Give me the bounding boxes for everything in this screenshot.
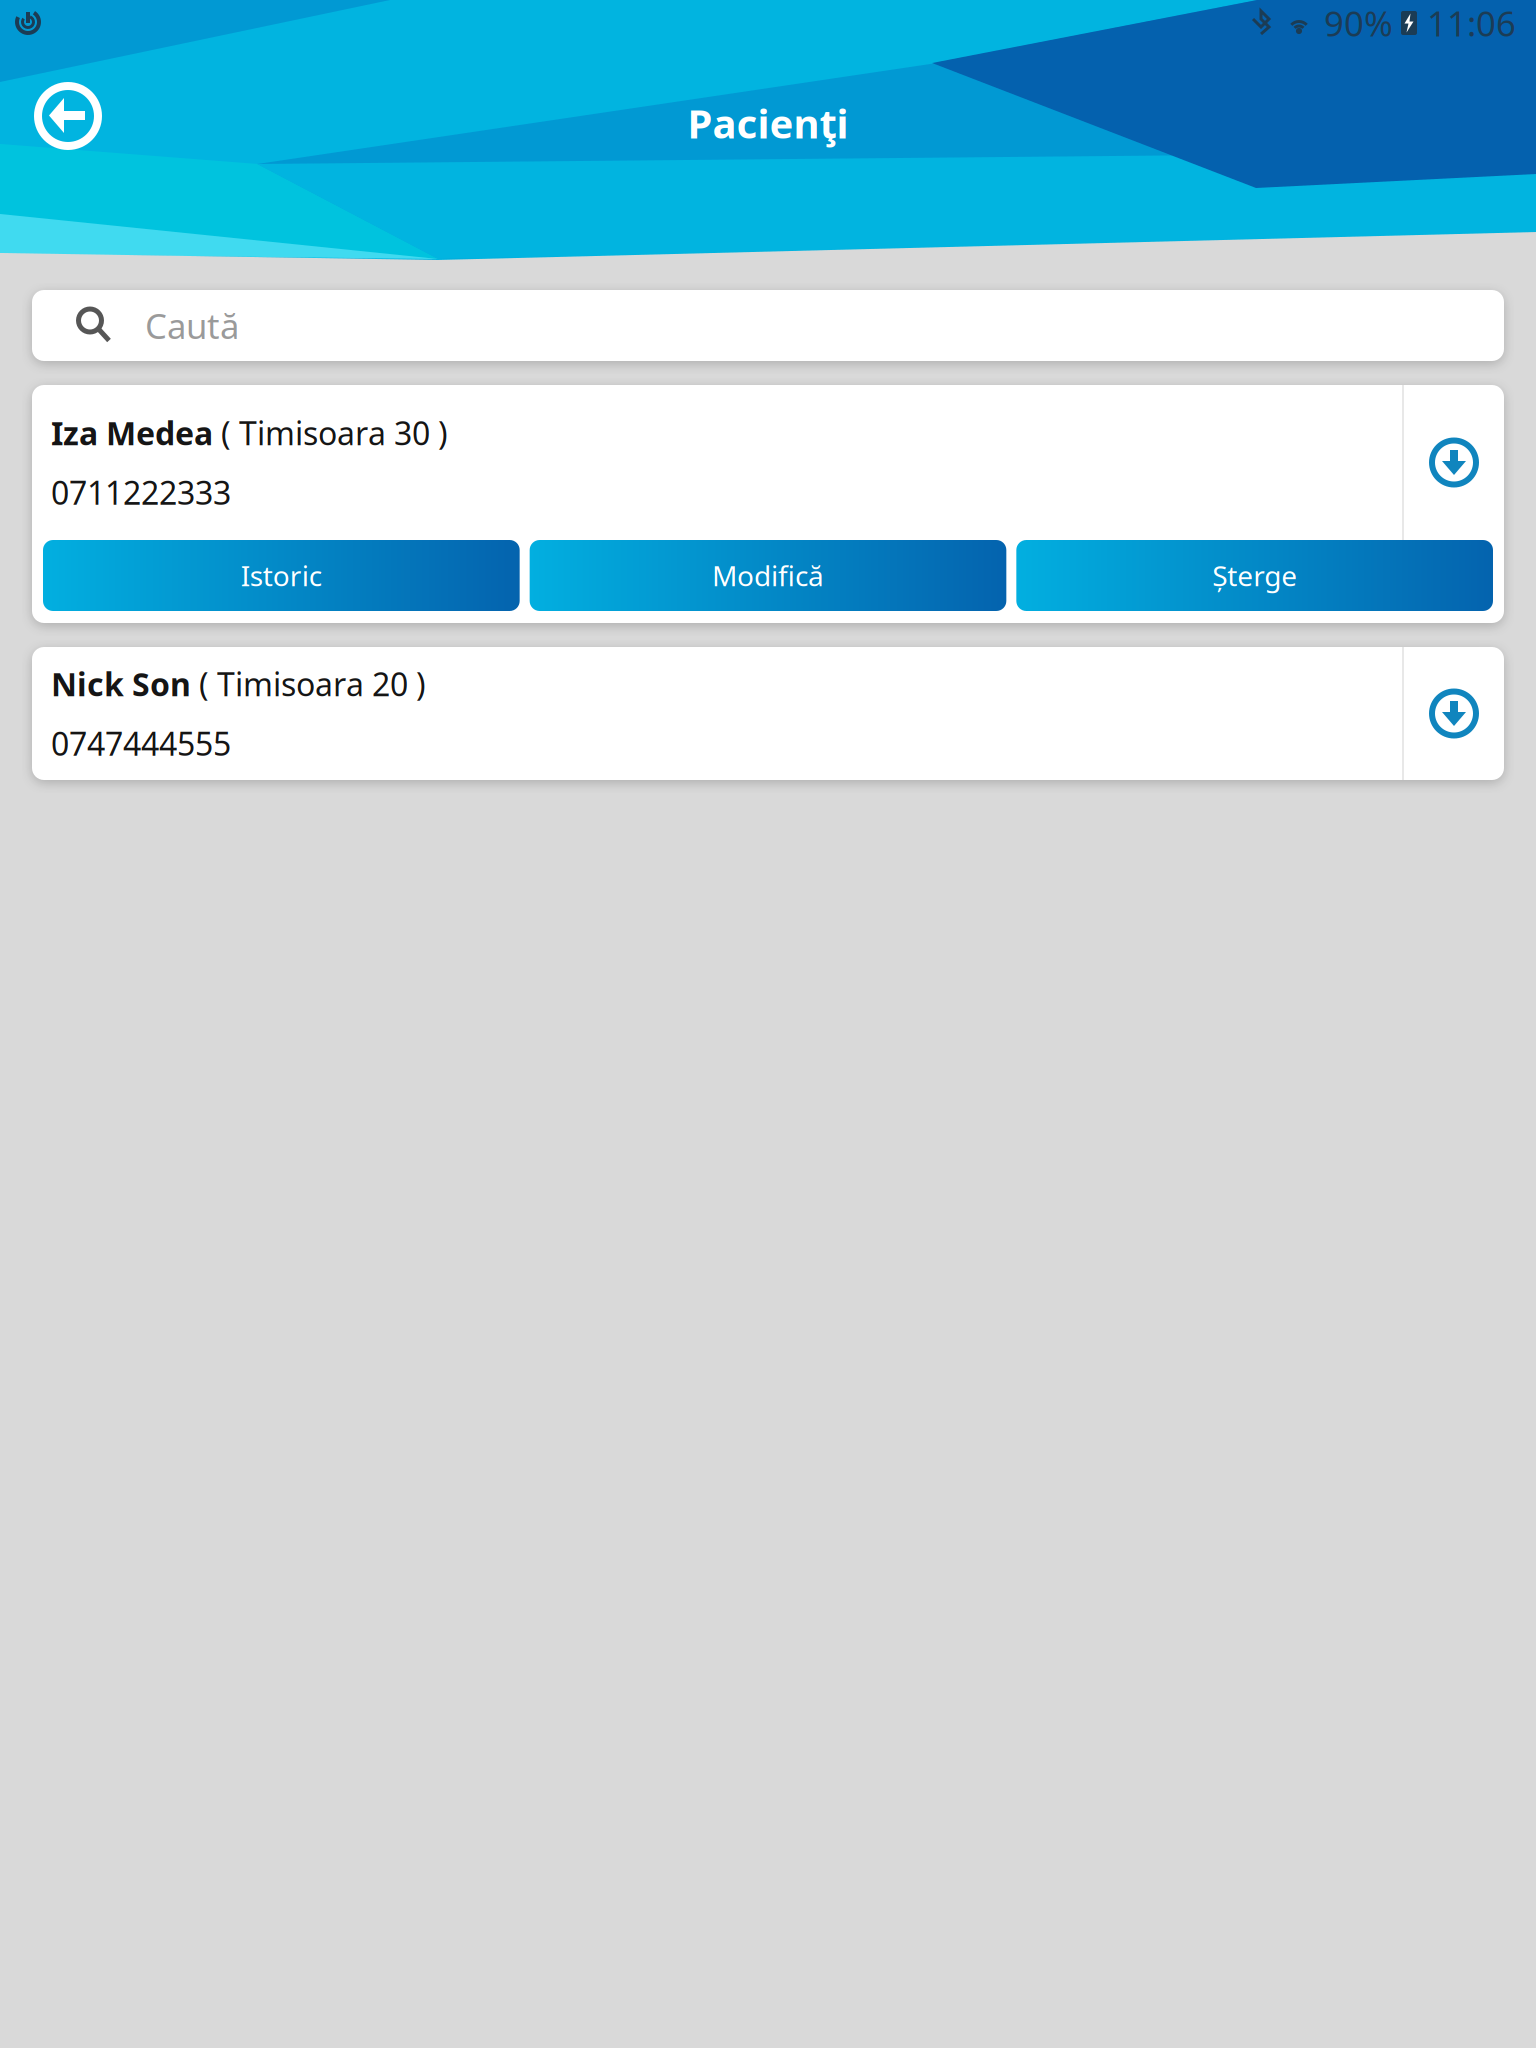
staticText: 0711222333: [51, 471, 231, 513]
staticText: Istoric: [241, 557, 322, 594]
staticText: ( Timisoara 20 ): [191, 662, 426, 705]
staticText: 11:06: [1427, 0, 1516, 46]
button[interactable]: Șterge: [1016, 540, 1493, 611]
button[interactable]: Download: [1404, 412, 1504, 512]
staticText: Iza Medea: [51, 411, 213, 454]
staticText: 90%: [1324, 0, 1393, 46]
button[interactable]: Search: [32, 290, 1504, 361]
staticText: ( Timisoara 30 ): [213, 411, 448, 454]
button[interactable]: Istoric: [43, 540, 520, 611]
staticText: Șterge: [1212, 557, 1297, 594]
staticText: Nick Son: [51, 662, 191, 705]
button[interactable]: Download: [1404, 663, 1504, 763]
staticText: Caută: [145, 302, 239, 348]
button[interactable]: Back: [22, 70, 114, 162]
staticText: 0747444555: [51, 722, 231, 764]
staticText: Pacienţi: [687, 96, 848, 149]
staticText: Modifică: [712, 557, 824, 594]
button[interactable]: Modifică: [530, 540, 1006, 611]
